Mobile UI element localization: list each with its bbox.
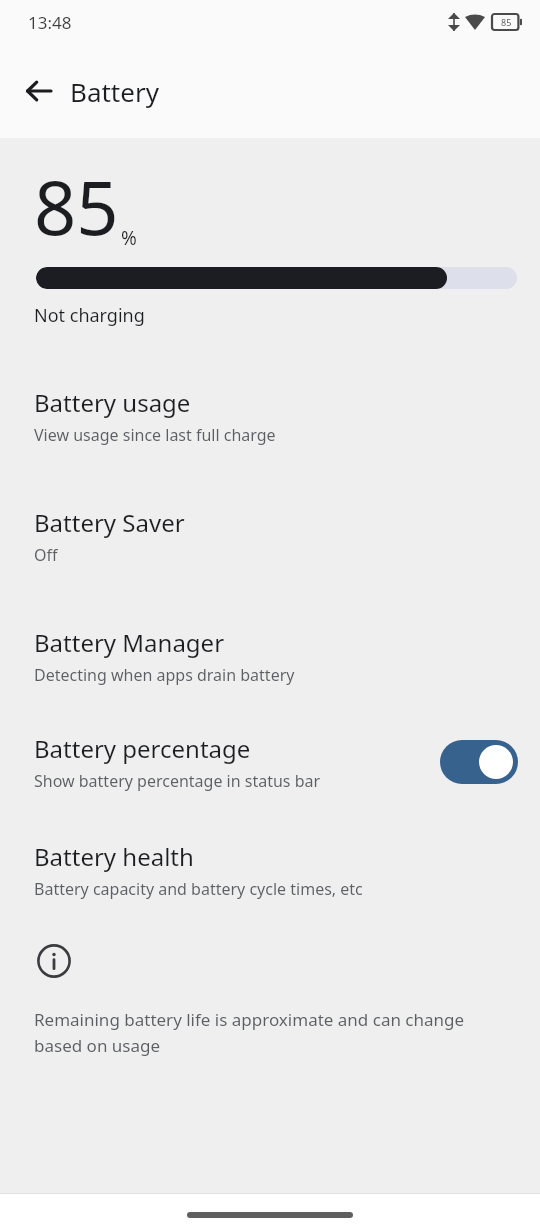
staticText: 85 xyxy=(34,156,119,257)
staticText: Battery capacity and battery cycle times… xyxy=(34,878,363,900)
button[interactable]: Battery usage xyxy=(0,328,540,446)
button[interactable]: Battery Manager xyxy=(0,566,540,686)
staticText: Battery health xyxy=(34,840,194,873)
button[interactable]: Battery percentage toggle xyxy=(440,740,518,784)
staticText: Battery Manager xyxy=(34,626,225,659)
button[interactable]: Battery percentage xyxy=(0,686,540,792)
staticText: Battery Saver xyxy=(34,506,185,539)
button[interactable]: Battery Saver xyxy=(0,446,540,566)
staticText: 85 xyxy=(501,16,512,28)
staticText: 13:48 xyxy=(28,11,72,34)
staticText: Battery usage xyxy=(34,386,191,419)
staticText: Off xyxy=(34,544,58,566)
staticText: Battery percentage xyxy=(34,732,251,765)
button[interactable]: Back xyxy=(14,67,62,115)
button[interactable]: Battery health xyxy=(0,792,540,900)
staticText: Not charging xyxy=(34,303,145,328)
staticText: Show battery percentage in status bar xyxy=(34,770,321,792)
staticText: Detecting when apps drain battery xyxy=(34,664,295,686)
staticText: View usage since last full charge xyxy=(34,424,276,446)
staticText: Battery xyxy=(70,74,159,109)
staticText: Remaining battery life is approximate an… xyxy=(34,1008,482,1057)
staticText: % xyxy=(121,225,137,251)
